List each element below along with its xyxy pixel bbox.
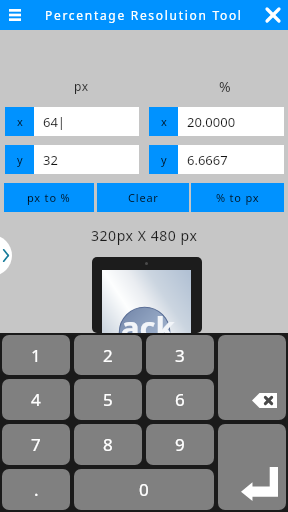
button[interactable]: 3 bbox=[146, 335, 214, 375]
button[interactable]: x bbox=[149, 107, 284, 136]
staticText: 6 bbox=[175, 388, 185, 411]
button[interactable]: 6 bbox=[146, 379, 214, 420]
staticText: . bbox=[34, 478, 39, 501]
button[interactable]: 9 bbox=[146, 424, 214, 465]
button[interactable]: 0 bbox=[74, 469, 214, 510]
staticText: % bbox=[219, 77, 231, 96]
button[interactable]: x bbox=[5, 107, 139, 136]
button[interactable]: 1 bbox=[2, 335, 70, 375]
staticText: 64| bbox=[43, 113, 66, 131]
staticText: 5 bbox=[103, 388, 113, 411]
button[interactable]: y bbox=[149, 145, 284, 174]
button[interactable]: 4 bbox=[2, 379, 70, 420]
staticText: % to px bbox=[216, 190, 260, 205]
button[interactable]: Next bbox=[0, 235, 12, 276]
staticText: Percentage Resolution Tool bbox=[45, 7, 243, 23]
staticText: x bbox=[17, 114, 23, 129]
staticText: 6.6667 bbox=[187, 151, 228, 169]
staticText: px bbox=[74, 78, 89, 94]
staticText: Clear bbox=[128, 190, 159, 205]
button[interactable]: 7 bbox=[2, 424, 70, 465]
staticText: 3 bbox=[175, 344, 185, 367]
button[interactable]: 2 bbox=[74, 335, 142, 375]
staticText: 8 bbox=[103, 433, 113, 456]
staticText: 1 bbox=[31, 344, 41, 367]
staticText: 20.0000 bbox=[187, 113, 236, 131]
button[interactable]: px to % bbox=[4, 183, 94, 212]
staticText: px to % bbox=[27, 190, 71, 205]
staticText: 320px X 480 px bbox=[91, 226, 198, 245]
staticText: 4 bbox=[31, 388, 41, 411]
button[interactable]: Backspace bbox=[218, 335, 286, 420]
button[interactable]: Clear bbox=[97, 183, 189, 212]
button[interactable]: 8 bbox=[74, 424, 142, 465]
button[interactable]: Enter bbox=[218, 424, 286, 510]
staticText: x bbox=[161, 114, 167, 129]
staticText: 0 bbox=[139, 478, 149, 501]
button[interactable]: . bbox=[2, 469, 70, 510]
button[interactable]: Close bbox=[258, 0, 288, 30]
staticText: ack bbox=[121, 306, 175, 333]
button[interactable]: 5 bbox=[74, 379, 142, 420]
staticText: y bbox=[161, 152, 167, 167]
staticText: 32 bbox=[43, 151, 58, 169]
staticText: 9 bbox=[175, 433, 185, 456]
button[interactable]: % to px bbox=[191, 183, 284, 212]
staticText: 7 bbox=[31, 433, 41, 456]
button[interactable]: y bbox=[5, 145, 139, 174]
staticText: 2 bbox=[103, 344, 113, 367]
staticText: y bbox=[17, 152, 23, 167]
button[interactable]: Menu bbox=[0, 0, 30, 30]
